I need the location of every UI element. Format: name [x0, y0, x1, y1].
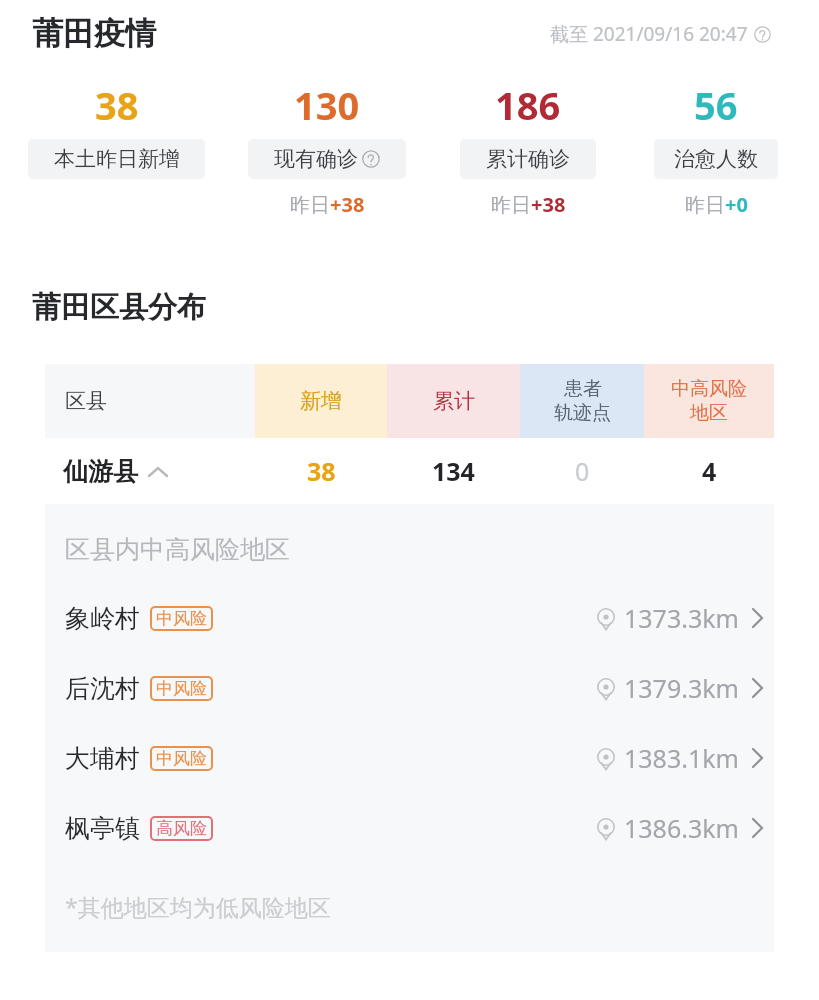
staticText: 4	[702, 454, 717, 488]
staticText: 现有确诊	[274, 146, 358, 172]
button[interactable]: 后沈村	[45, 653, 774, 723]
staticText: 130	[294, 79, 360, 131]
staticText: 新增	[300, 388, 342, 414]
button[interactable]: 枫亭镇	[45, 793, 774, 863]
staticText: 昨日+38	[491, 191, 566, 218]
staticText: 0	[575, 454, 590, 488]
button[interactable]: 截至 2021/09/16 20:47	[550, 21, 771, 47]
staticText: 患者	[564, 377, 602, 401]
staticText: 186	[495, 79, 561, 131]
staticText: 象岭村	[65, 603, 140, 634]
staticText: 后沈村	[65, 673, 140, 704]
staticText: 中风险	[156, 678, 207, 699]
button[interactable]: 仙游县	[45, 438, 774, 504]
staticText: 昨日+38	[290, 191, 365, 218]
staticText: 高风险	[156, 818, 207, 839]
staticText: 1383.1km	[624, 741, 739, 775]
staticText: 区县内中高风险地区	[65, 534, 290, 565]
staticText: 56	[694, 79, 738, 131]
staticText: 区县	[65, 388, 107, 414]
staticText: 轨迹点	[554, 401, 611, 425]
staticText: 1386.3km	[624, 811, 739, 845]
staticText: 莆田区县分布	[32, 289, 206, 326]
button[interactable]: 56	[654, 79, 778, 218]
staticText: 1379.3km	[624, 671, 739, 705]
staticText: 134	[432, 454, 475, 488]
staticText: 中高风险	[671, 377, 747, 401]
staticText: 枫亭镇	[65, 813, 140, 844]
button[interactable]: 象岭村	[45, 583, 774, 653]
staticText: *其他地区均为低风险地区	[65, 891, 331, 922]
other: Info	[754, 26, 771, 43]
staticText: 累计确诊	[486, 146, 570, 172]
staticText: 中风险	[156, 608, 207, 629]
button[interactable]: 186	[460, 79, 596, 218]
button[interactable]: 大埔村	[45, 723, 774, 793]
staticText: 38	[95, 79, 139, 131]
staticText: 大埔村	[65, 743, 140, 774]
other: Info	[362, 150, 380, 168]
staticText: 昨日+0	[685, 191, 748, 218]
staticText: 莆田疫情	[32, 14, 156, 53]
staticText: 截至 2021/09/16 20:47	[550, 21, 748, 47]
button[interactable]: 38	[28, 79, 205, 179]
button[interactable]: 130	[248, 79, 406, 218]
staticText: 治愈人数	[674, 146, 758, 172]
staticText: 仙游县	[63, 456, 138, 487]
staticText: 38	[307, 454, 336, 488]
staticText: 1373.3km	[624, 601, 739, 635]
staticText: 本土昨日新增	[54, 146, 180, 172]
staticText: 中风险	[156, 748, 207, 769]
staticText: 累计	[433, 388, 475, 414]
staticText: 地区	[690, 401, 728, 425]
